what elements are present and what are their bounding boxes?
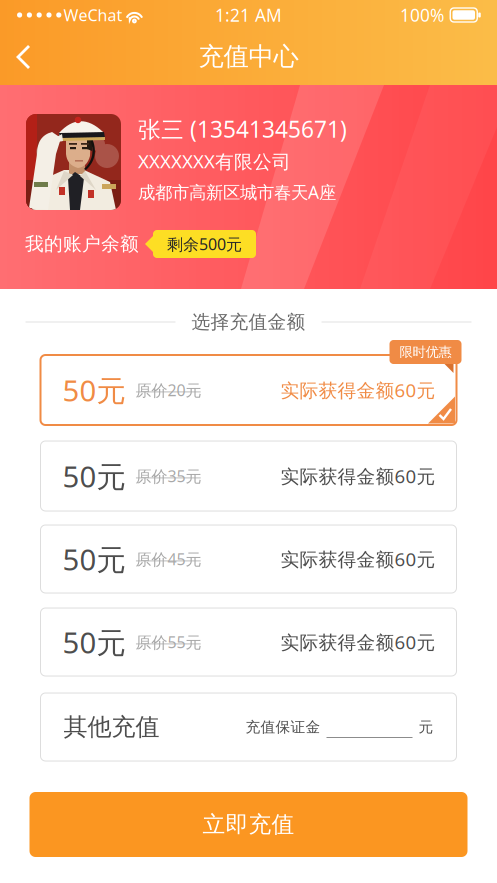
staticText: 50元 (62, 370, 125, 409)
staticText: 原价35元 (135, 465, 201, 487)
staticText: XXXXXXX有限公司 (138, 149, 291, 173)
button[interactable]: 立即充值 (29, 792, 467, 857)
staticText: WeChat (63, 4, 122, 26)
button[interactable]: 50元 (40, 355, 456, 425)
staticText: 50元 (62, 539, 125, 578)
button[interactable]: 其他充值 (40, 693, 456, 761)
staticText: 原价45元 (135, 548, 201, 570)
staticText: 100% (400, 3, 444, 26)
staticText: 50元 (62, 622, 125, 661)
button[interactable]: Back (0, 32, 46, 83)
staticText: 实际获得金额60元 (280, 378, 435, 402)
staticText: 选择充值金额 (191, 310, 305, 333)
button[interactable]: 50元 (40, 608, 456, 676)
staticText: 1:21 AM (215, 3, 282, 26)
staticText: 成都市高新区城市春天A座 (138, 180, 336, 203)
staticText: 实际获得金额60元 (280, 547, 435, 571)
staticText: 原价55元 (135, 631, 201, 653)
button[interactable]: 50元 (40, 525, 456, 593)
staticText: 其他充值 (63, 712, 159, 742)
button[interactable]: 50元 (40, 441, 456, 511)
staticText: 50元 (62, 456, 125, 495)
staticText: 实际获得金额60元 (280, 630, 435, 654)
staticText: 限时优惠 (399, 344, 451, 360)
staticText: 充值中心 (198, 41, 298, 72)
staticText: 张三 (13541345671) (138, 114, 347, 144)
staticText: 我的账户余额 (25, 232, 139, 255)
staticText: 原价20元 (135, 379, 201, 401)
staticText: 剩余500元 (167, 233, 242, 255)
staticText: 充值保证金 (245, 718, 320, 736)
staticText: 元 (418, 718, 433, 736)
staticText: 立即充值 (202, 811, 294, 838)
staticText: 实际获得金额60元 (280, 464, 435, 488)
